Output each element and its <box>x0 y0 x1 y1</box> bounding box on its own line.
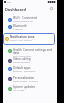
button[interactable] <box>3 33 55 45</box>
staticText: Up to date <box>13 89 25 92</box>
staticText: Dashboard <box>5 7 27 12</box>
button[interactable] <box>3 15 57 24</box>
staticText: 9:41 <box>7 1 12 4</box>
staticText: Notification tone <box>10 35 35 39</box>
button[interactable] <box>3 47 57 56</box>
staticText: Home screen · Themes <box>13 80 38 83</box>
staticText: System updates <box>13 85 35 89</box>
staticText: Browser · Messaging <box>13 70 36 73</box>
staticText: Wi-Fi · Connected <box>13 16 37 20</box>
staticText: Sync across apps <box>13 55 32 58</box>
button[interactable]: Settings <box>49 6 54 11</box>
staticText: Personalisation <box>13 76 35 80</box>
staticText: Video calling <box>13 57 31 61</box>
staticText: 2 devices <box>13 28 23 31</box>
staticText: Carrier enabled <box>13 61 30 64</box>
button[interactable] <box>3 23 57 32</box>
button[interactable] <box>3 74 57 83</box>
staticText: Bluetooth <box>13 24 27 28</box>
staticText: Default apps <box>13 66 31 70</box>
staticText: Home network 5G <box>13 20 33 23</box>
staticText: Ripple · 80% volume <box>10 39 32 42</box>
button[interactable] <box>3 56 57 65</box>
button[interactable] <box>3 84 57 93</box>
staticText: Health Connect settings and data <box>13 48 55 55</box>
button[interactable] <box>3 65 57 74</box>
